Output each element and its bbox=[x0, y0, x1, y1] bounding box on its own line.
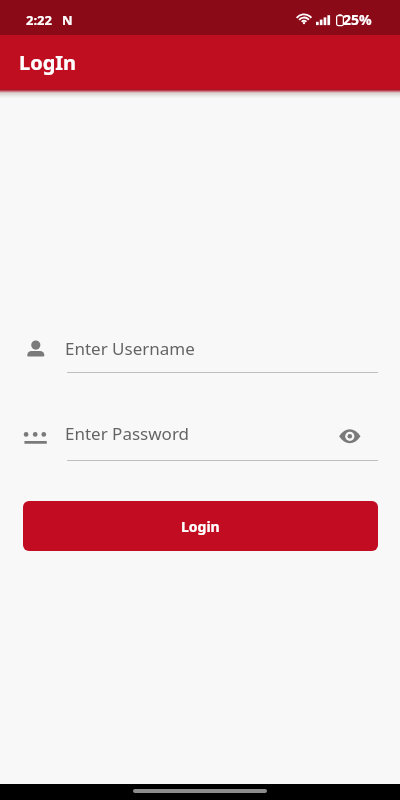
staticText: Enter Username bbox=[65, 337, 195, 360]
button[interactable]: Show password bbox=[326, 418, 374, 463]
button[interactable]: Enter Password bbox=[0, 418, 400, 463]
staticText: N bbox=[62, 11, 73, 29]
staticText: 2:22 bbox=[26, 11, 52, 29]
button[interactable]: Login bbox=[23, 501, 378, 551]
staticText: 25% bbox=[343, 10, 372, 29]
staticText: Login bbox=[181, 517, 220, 536]
staticText: LogIn bbox=[19, 49, 77, 76]
button[interactable]: Enter Username bbox=[0, 330, 400, 375]
staticText: Enter Password bbox=[65, 422, 190, 445]
